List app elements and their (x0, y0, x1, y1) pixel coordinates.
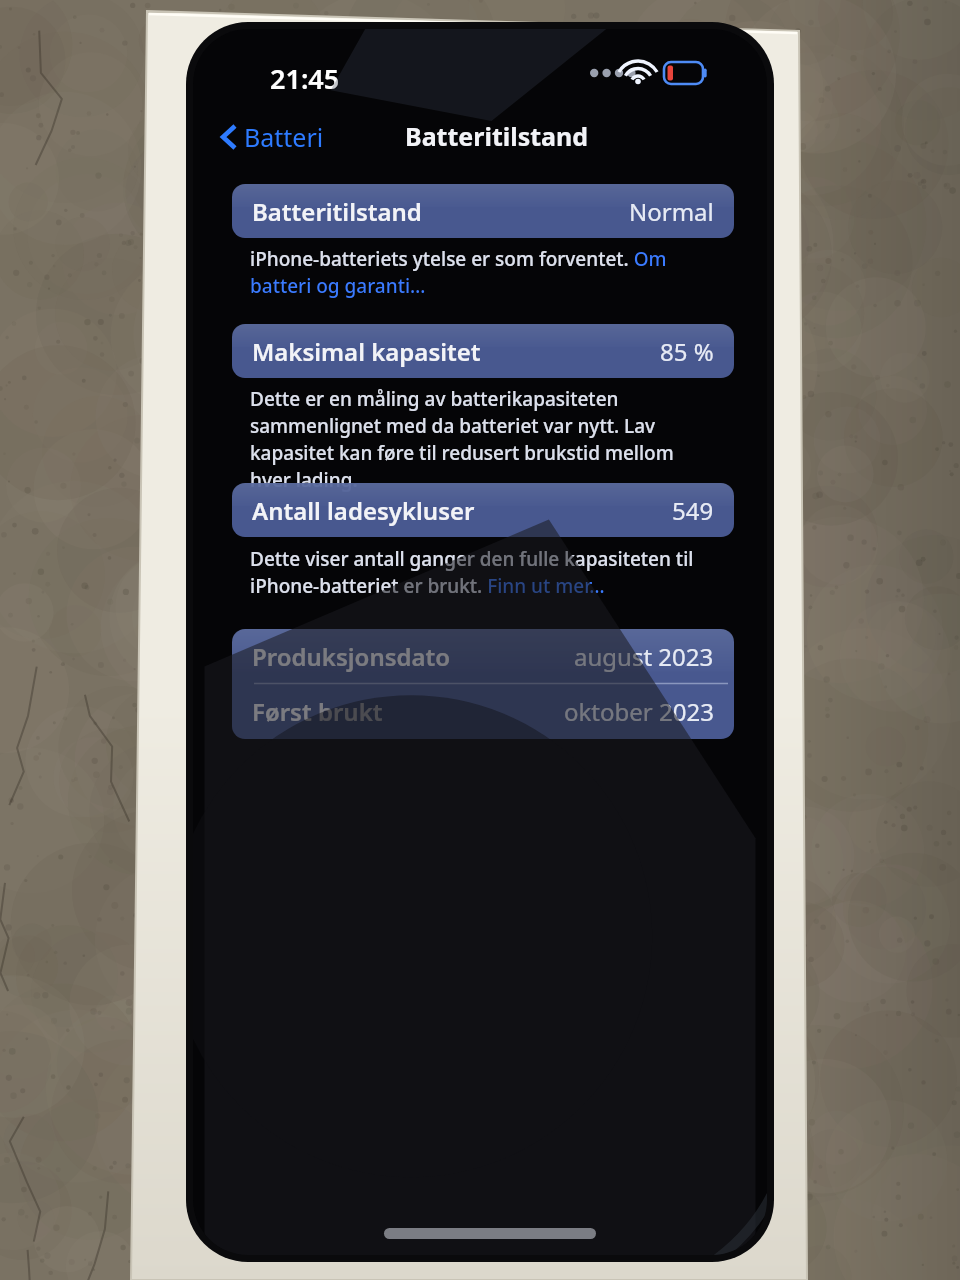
staticText: 85 % (660, 335, 714, 368)
staticText: oktober 2023 (564, 695, 714, 728)
button[interactable]: Maksimal kapasitet (232, 324, 734, 378)
button[interactable]: Antall ladesykluser (232, 483, 734, 537)
staticText: Først brukt (252, 695, 383, 728)
button[interactable]: iPhone-batteriets ytelse er som forvente… (250, 246, 682, 299)
staticText: Batteritilstand (405, 119, 589, 153)
staticText: 21:45 (270, 60, 340, 97)
staticText: 549 (672, 494, 714, 527)
staticText: Maksimal kapasitet (252, 335, 481, 368)
staticText: Antall ladesykluser (252, 494, 475, 527)
button[interactable]: Batteritilstand (232, 184, 734, 238)
staticText: Batteri (244, 120, 324, 154)
staticText: Normal (629, 195, 714, 228)
staticText: Produksjonsdato (252, 640, 451, 673)
button[interactable]: Batteri (218, 118, 326, 156)
button[interactable]: Produksjonsdato (232, 629, 734, 683)
staticText: Batteritilstand (252, 195, 422, 228)
button[interactable]: Først brukt (232, 684, 734, 739)
button[interactable]: Dette viser antall ganger den fulle kapa… (250, 546, 702, 599)
staticText: august 2023 (574, 640, 714, 673)
button[interactable]: Dette er en måling av batterikapasiteten… (250, 386, 690, 493)
other: Battery low (664, 62, 708, 84)
other: Wi-Fi (622, 60, 654, 86)
